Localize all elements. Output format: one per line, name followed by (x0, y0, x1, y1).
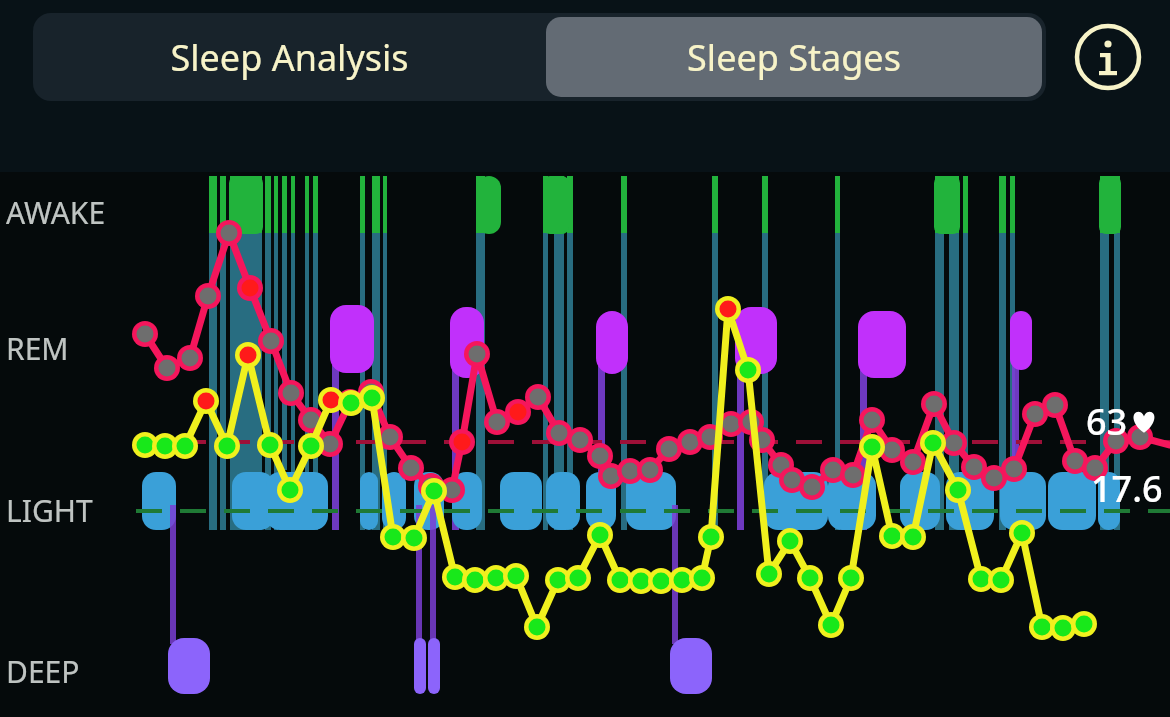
staticText: DEEP (6, 651, 80, 689)
button[interactable]: Sleep Analysis (37, 17, 542, 97)
staticText: AWAKE (6, 192, 106, 230)
staticText: LIGHT (6, 490, 93, 528)
staticText: 63 (1086, 397, 1128, 446)
staticText: REM (6, 328, 69, 366)
staticText: Sleep Stages (687, 33, 901, 82)
button[interactable]: Sleep Stages (546, 17, 1042, 97)
staticText: 17.6 (1091, 464, 1163, 513)
staticText: Sleep Analysis (170, 33, 409, 82)
button[interactable]: Information (1073, 22, 1143, 92)
